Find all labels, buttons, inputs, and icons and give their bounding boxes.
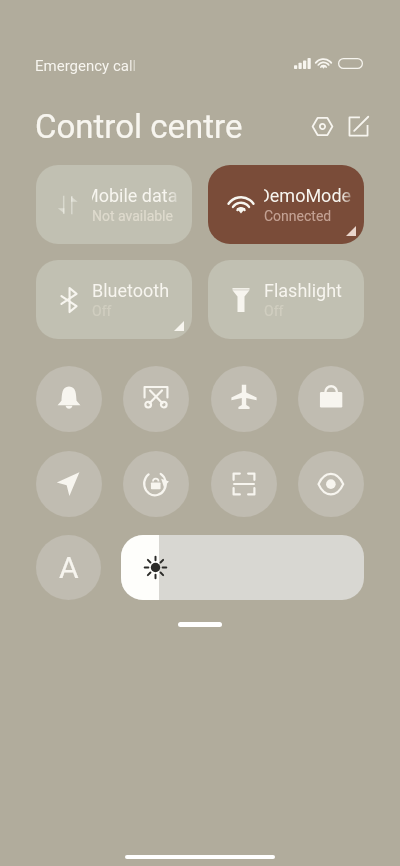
- staticText: Bluetooth: [92, 280, 170, 301]
- button[interactable]: Edit: [340, 108, 376, 144]
- button[interactable]: Mobile data: [36, 165, 192, 244]
- staticText: Off: [92, 303, 112, 319]
- button[interactable]: Lock screen: [298, 366, 364, 432]
- staticText: A: [59, 550, 79, 585]
- staticText: Off: [264, 303, 284, 319]
- button[interactable]: Location: [36, 451, 102, 517]
- button[interactable]: DemoMode: [208, 165, 364, 244]
- staticText: Control centre: [35, 107, 243, 146]
- button[interactable]: Flashlight: [208, 260, 364, 339]
- button[interactable]: Silent mode: [36, 366, 102, 432]
- button[interactable]: Brightness: [121, 535, 364, 600]
- button[interactable]: Auto brightness: [36, 535, 101, 600]
- staticText: Not available: [92, 208, 173, 224]
- button[interactable]: Settings: [304, 108, 340, 144]
- staticText: Connected: [264, 208, 332, 224]
- button[interactable]: Reading mode: [298, 451, 364, 517]
- button[interactable]: Auto-rotate: [123, 451, 189, 517]
- staticText: Emergency calls only: [35, 57, 137, 75]
- button[interactable]: Collapse: [178, 622, 222, 627]
- staticText: Mobile data: [92, 185, 178, 206]
- button[interactable]: Scan QR code: [211, 451, 277, 517]
- button[interactable]: Bluetooth: [36, 260, 192, 339]
- staticText: DemoMode: [264, 185, 351, 206]
- button[interactable]: Screenshot: [123, 366, 189, 432]
- button[interactable]: Aeroplane mode: [211, 366, 277, 432]
- staticText: Flashlight: [264, 280, 342, 301]
